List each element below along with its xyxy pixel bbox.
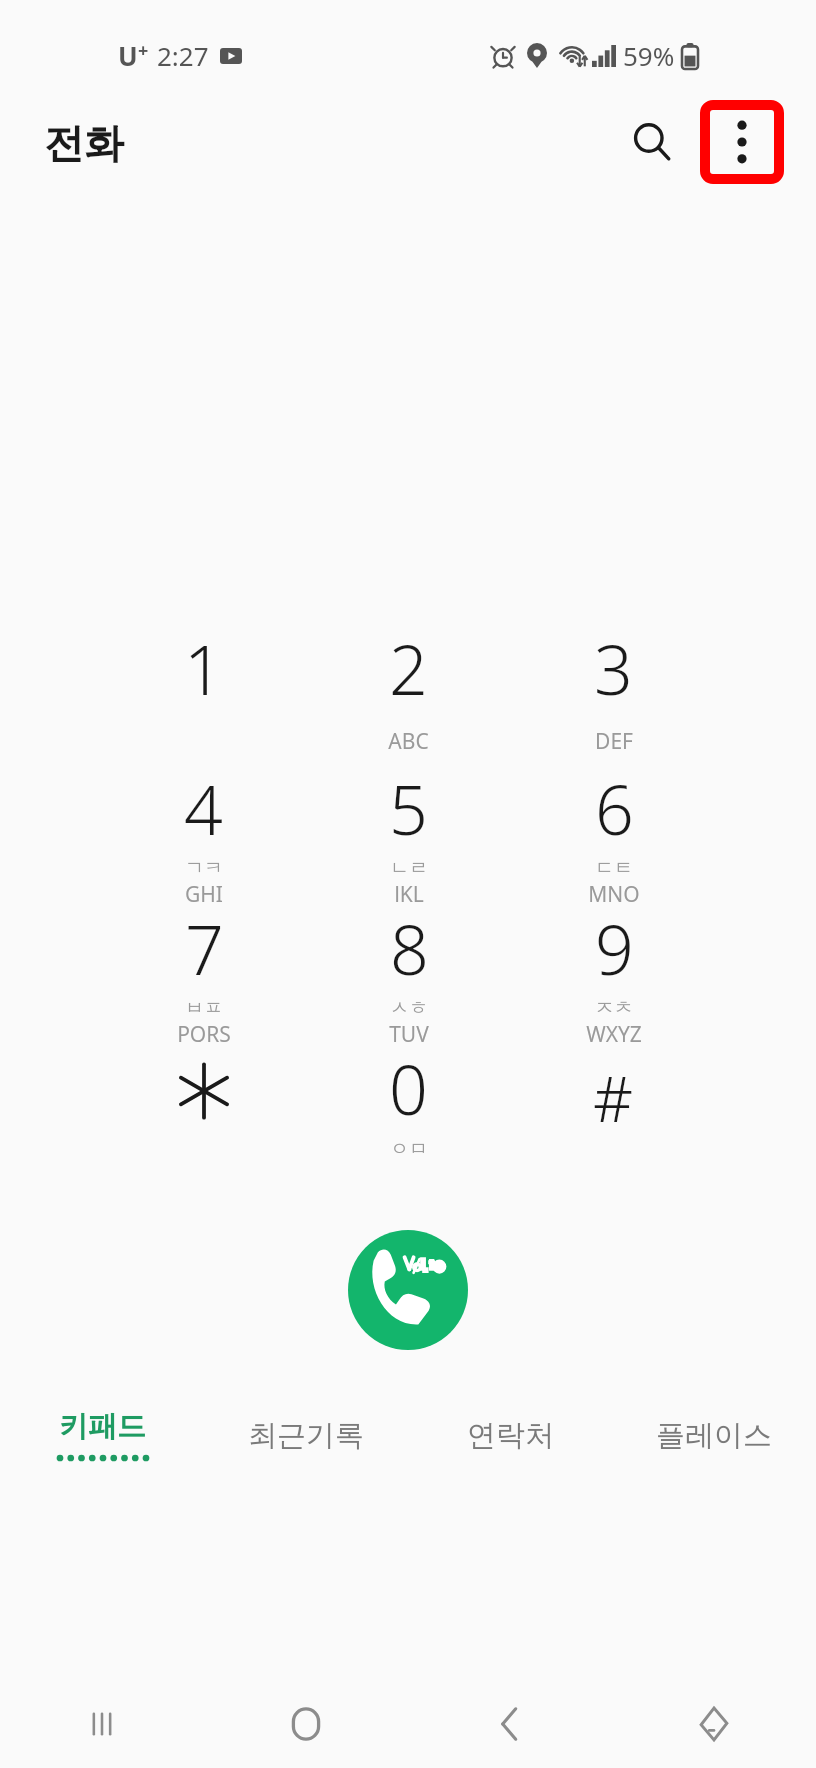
button[interactable]: 4 (101, 762, 306, 902)
button[interactable]: 연락처 (408, 1380, 612, 1490)
staticText: ㅈㅊ (595, 996, 633, 1020)
staticText: TUV (389, 1020, 429, 1042)
button[interactable]: 6 (511, 762, 716, 902)
staticText: 전화 (44, 118, 124, 168)
button[interactable]: 7 (101, 902, 306, 1042)
staticText: ㅂㅍ (185, 996, 223, 1020)
staticText: 0 (389, 1042, 428, 1135)
staticText: GHI (185, 880, 223, 902)
staticText: 키패드 (59, 1408, 146, 1445)
staticText: WXYZ (586, 1020, 642, 1042)
staticText: 9 (595, 902, 634, 995)
button[interactable]: 최근기록 (204, 1380, 408, 1490)
button[interactable]: Recents (0, 1680, 204, 1768)
staticText: 1 (184, 622, 223, 715)
button[interactable]: 키패드 (0, 1380, 204, 1490)
staticText: ㄱㅋ (185, 856, 223, 880)
staticText: 59% (623, 38, 675, 73)
staticText: ABC (388, 727, 429, 756)
button[interactable]: 2 (306, 622, 511, 762)
staticText: ㅅㅎ (390, 996, 428, 1020)
button[interactable]: More options (700, 100, 784, 184)
staticText: 최근기록 (248, 1417, 364, 1454)
staticText: ㄴㄹ (390, 856, 428, 880)
button[interactable]: Home (204, 1680, 408, 1768)
button[interactable] (101, 1042, 306, 1180)
staticText: 2:27 (157, 38, 209, 73)
staticText: # (593, 1056, 634, 1140)
staticText: DEF (595, 727, 633, 756)
button[interactable]: 1 (101, 622, 306, 762)
staticText: 6 (595, 762, 634, 855)
staticText: U (118, 38, 138, 73)
button[interactable]: 플레이스 (612, 1380, 816, 1490)
button[interactable]: 0 (306, 1042, 511, 1180)
button[interactable]: 5 (306, 762, 511, 902)
staticText: + (138, 38, 149, 63)
staticText: JKL (394, 880, 424, 902)
staticText: 3 (594, 622, 633, 715)
staticText: 플레이스 (656, 1417, 772, 1454)
staticText: 7 (185, 902, 224, 995)
button[interactable]: Call (348, 1230, 468, 1350)
staticText: PQRS (177, 1020, 231, 1042)
staticText: ㅇㅁ (390, 1137, 428, 1161)
button[interactable]: Search (610, 100, 694, 184)
staticText: MNO (588, 880, 640, 902)
staticText: 8 (390, 902, 429, 995)
staticText: ㄷㅌ (595, 856, 633, 880)
button[interactable]: 9 (511, 902, 716, 1042)
button[interactable]: Hide keyboard (612, 1680, 816, 1768)
button[interactable]: 3 (511, 622, 716, 762)
button[interactable]: # (511, 1042, 716, 1180)
staticText: 2 (389, 622, 428, 715)
staticText: 연락처 (467, 1417, 554, 1454)
button[interactable]: Back (408, 1680, 612, 1768)
staticText: 5 (389, 762, 428, 855)
staticText: 4 (184, 762, 223, 855)
button[interactable]: 8 (306, 902, 511, 1042)
